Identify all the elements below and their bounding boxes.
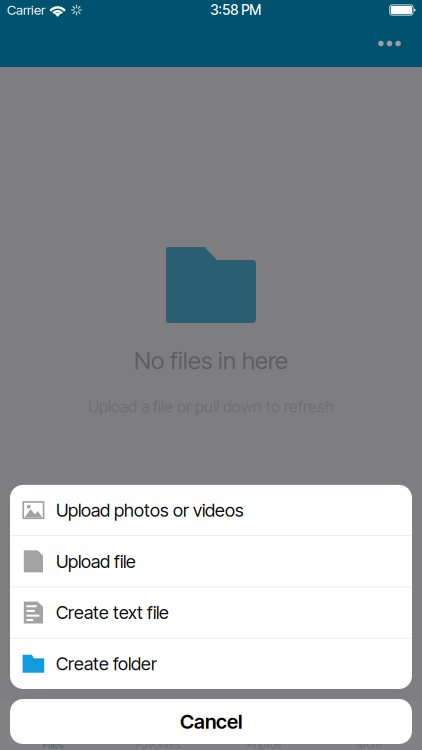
staticText: Photos xyxy=(247,738,281,750)
button[interactable]: Cancel xyxy=(10,699,412,744)
button[interactable]: Upload photos or videos xyxy=(10,485,412,535)
staticText: 3:58 PM xyxy=(210,1,261,18)
staticText: Create folder xyxy=(56,653,157,675)
button[interactable]: Create text file xyxy=(10,587,412,638)
staticText: No files in here xyxy=(134,346,288,375)
staticText: Files xyxy=(42,738,63,750)
button[interactable]: Upload file xyxy=(10,536,412,587)
staticText: Upload a file or pull down to refresh xyxy=(88,397,334,416)
staticText: More xyxy=(357,738,382,750)
button[interactable]: More xyxy=(316,701,422,750)
staticText: Favorites xyxy=(136,738,181,750)
staticText: Carrier xyxy=(7,2,45,18)
button[interactable]: More options xyxy=(367,21,411,65)
staticText: Upload file xyxy=(56,550,136,572)
button[interactable]: Create folder xyxy=(10,638,412,689)
staticText: Upload photos or videos xyxy=(56,499,244,521)
button[interactable]: Favorites xyxy=(105,701,211,750)
button[interactable]: Photos xyxy=(211,701,316,750)
staticText: Cancel xyxy=(180,709,242,734)
staticText: Create text file xyxy=(56,602,169,623)
button[interactable]: Files xyxy=(0,701,105,750)
